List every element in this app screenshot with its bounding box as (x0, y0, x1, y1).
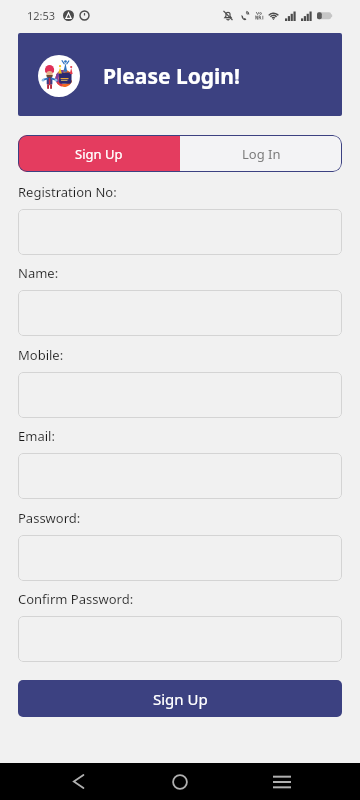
staticText: Mobile: (18, 346, 64, 364)
button[interactable] (18, 290, 342, 336)
button[interactable]: Log In (180, 135, 342, 172)
staticText: Name: (18, 264, 59, 282)
button[interactable]: Back (54, 763, 102, 800)
button[interactable]: Sign Up (18, 135, 180, 172)
staticText: Sign Up (153, 689, 208, 709)
staticText: Sign Up (75, 145, 123, 163)
staticText: Log In (242, 145, 281, 163)
staticText: Confirm Password: (18, 590, 134, 608)
button[interactable] (18, 209, 342, 255)
button[interactable]: Recent apps (258, 763, 306, 800)
staticText: Password: (18, 509, 81, 527)
staticText: 12:53 (27, 8, 56, 23)
button[interactable] (18, 535, 342, 581)
staticText: Registration No: (18, 183, 117, 201)
staticText: Please Login! (103, 62, 240, 91)
staticText: Email: (18, 427, 55, 445)
button[interactable] (18, 453, 342, 499)
button[interactable] (18, 616, 342, 662)
button[interactable] (18, 372, 342, 418)
button[interactable]: Home (156, 763, 204, 800)
button[interactable]: Sign Up (18, 680, 342, 717)
